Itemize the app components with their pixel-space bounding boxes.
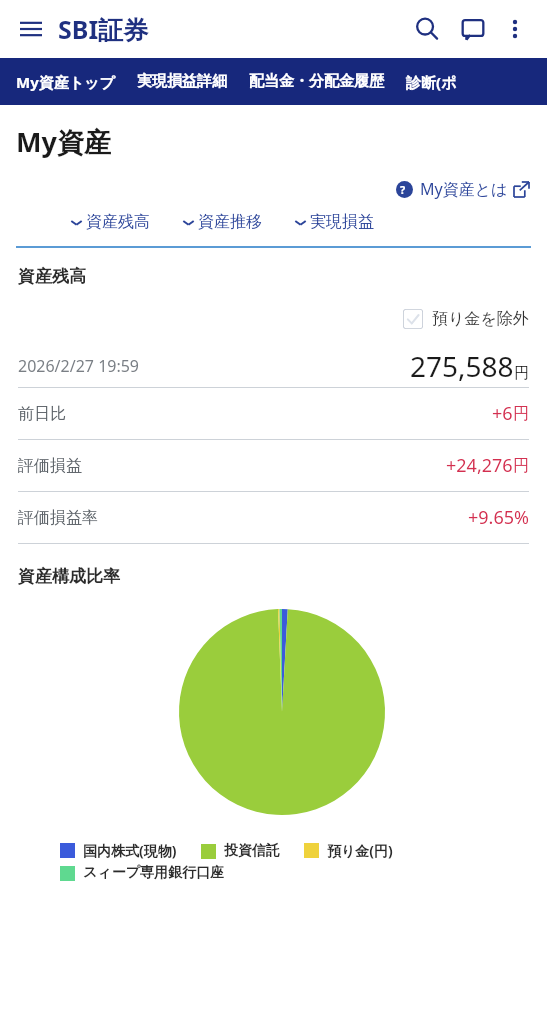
- staticText: 投資信託: [224, 842, 280, 860]
- staticText: +9.65%: [468, 505, 529, 530]
- button[interactable]: Messages: [453, 9, 493, 49]
- staticText: 円: [513, 404, 529, 424]
- staticText: スィープ専用銀行口座: [83, 864, 224, 882]
- staticText: 円: [514, 364, 529, 383]
- button[interactable]: ?: [396, 178, 529, 200]
- button[interactable]: 実現損益: [294, 212, 374, 232]
- staticText: 配当金・分配金履歴: [249, 72, 384, 91]
- staticText: 前日比: [18, 404, 66, 424]
- staticText: 評価損益率: [18, 508, 98, 528]
- button[interactable]: 資産残高: [70, 212, 150, 232]
- button[interactable]: 資産推移: [182, 212, 262, 232]
- staticText: My資産: [16, 123, 111, 160]
- staticText: My資産とは: [420, 178, 508, 200]
- button[interactable]: 配当金・分配金履歴: [249, 72, 384, 91]
- staticText: 資産構成比率: [18, 566, 120, 587]
- staticText: +24,276: [446, 453, 513, 478]
- staticText: 円: [513, 456, 529, 476]
- staticText: ?: [400, 182, 406, 197]
- staticText: 評価損益: [18, 456, 82, 476]
- staticText: 資産残高: [86, 212, 150, 232]
- staticText: 資産推移: [198, 212, 262, 232]
- staticText: My資産トップ: [16, 72, 115, 92]
- button[interactable]: 預り金を除外: [403, 309, 529, 329]
- staticText: 預り金(円): [327, 841, 393, 860]
- button[interactable]: 診断(ポ: [406, 72, 457, 92]
- staticText: 預り金を除外: [432, 309, 529, 329]
- button[interactable]: Menu: [14, 12, 48, 46]
- button[interactable]: More options: [495, 9, 535, 49]
- staticText: 実現損益詳細: [137, 72, 227, 91]
- button[interactable]: My資産トップ: [16, 72, 115, 92]
- button[interactable]: Search: [407, 9, 447, 49]
- staticText: 2026/2/27 19:59: [18, 355, 140, 377]
- staticText: 資産残高: [18, 266, 86, 287]
- staticText: SBI証券: [58, 12, 149, 46]
- staticText: 国内株式(現物): [83, 841, 177, 860]
- staticText: 275,588: [410, 347, 514, 385]
- button[interactable]: 実現損益詳細: [137, 72, 227, 91]
- staticText: 実現損益: [310, 212, 374, 232]
- staticText: 診断(ポ: [406, 72, 457, 92]
- staticText: +6: [492, 401, 513, 426]
